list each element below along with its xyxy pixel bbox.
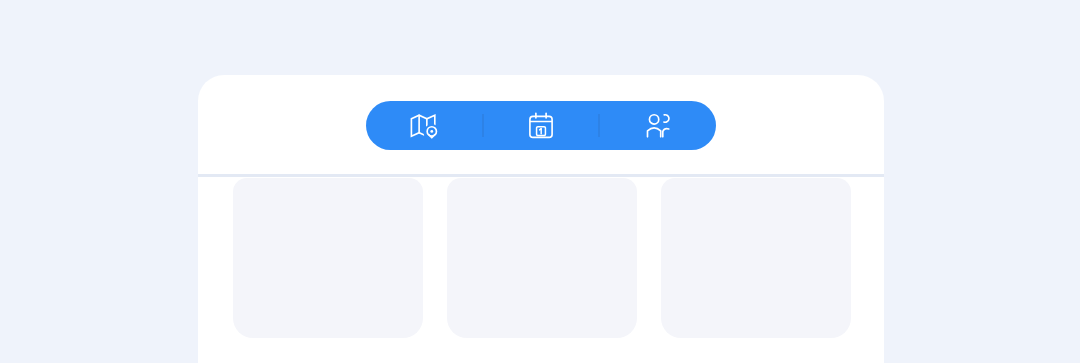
- button[interactable]: Calendar: [484, 101, 598, 150]
- button[interactable]: Map: [366, 101, 482, 150]
- button[interactable]: People: [600, 101, 716, 150]
